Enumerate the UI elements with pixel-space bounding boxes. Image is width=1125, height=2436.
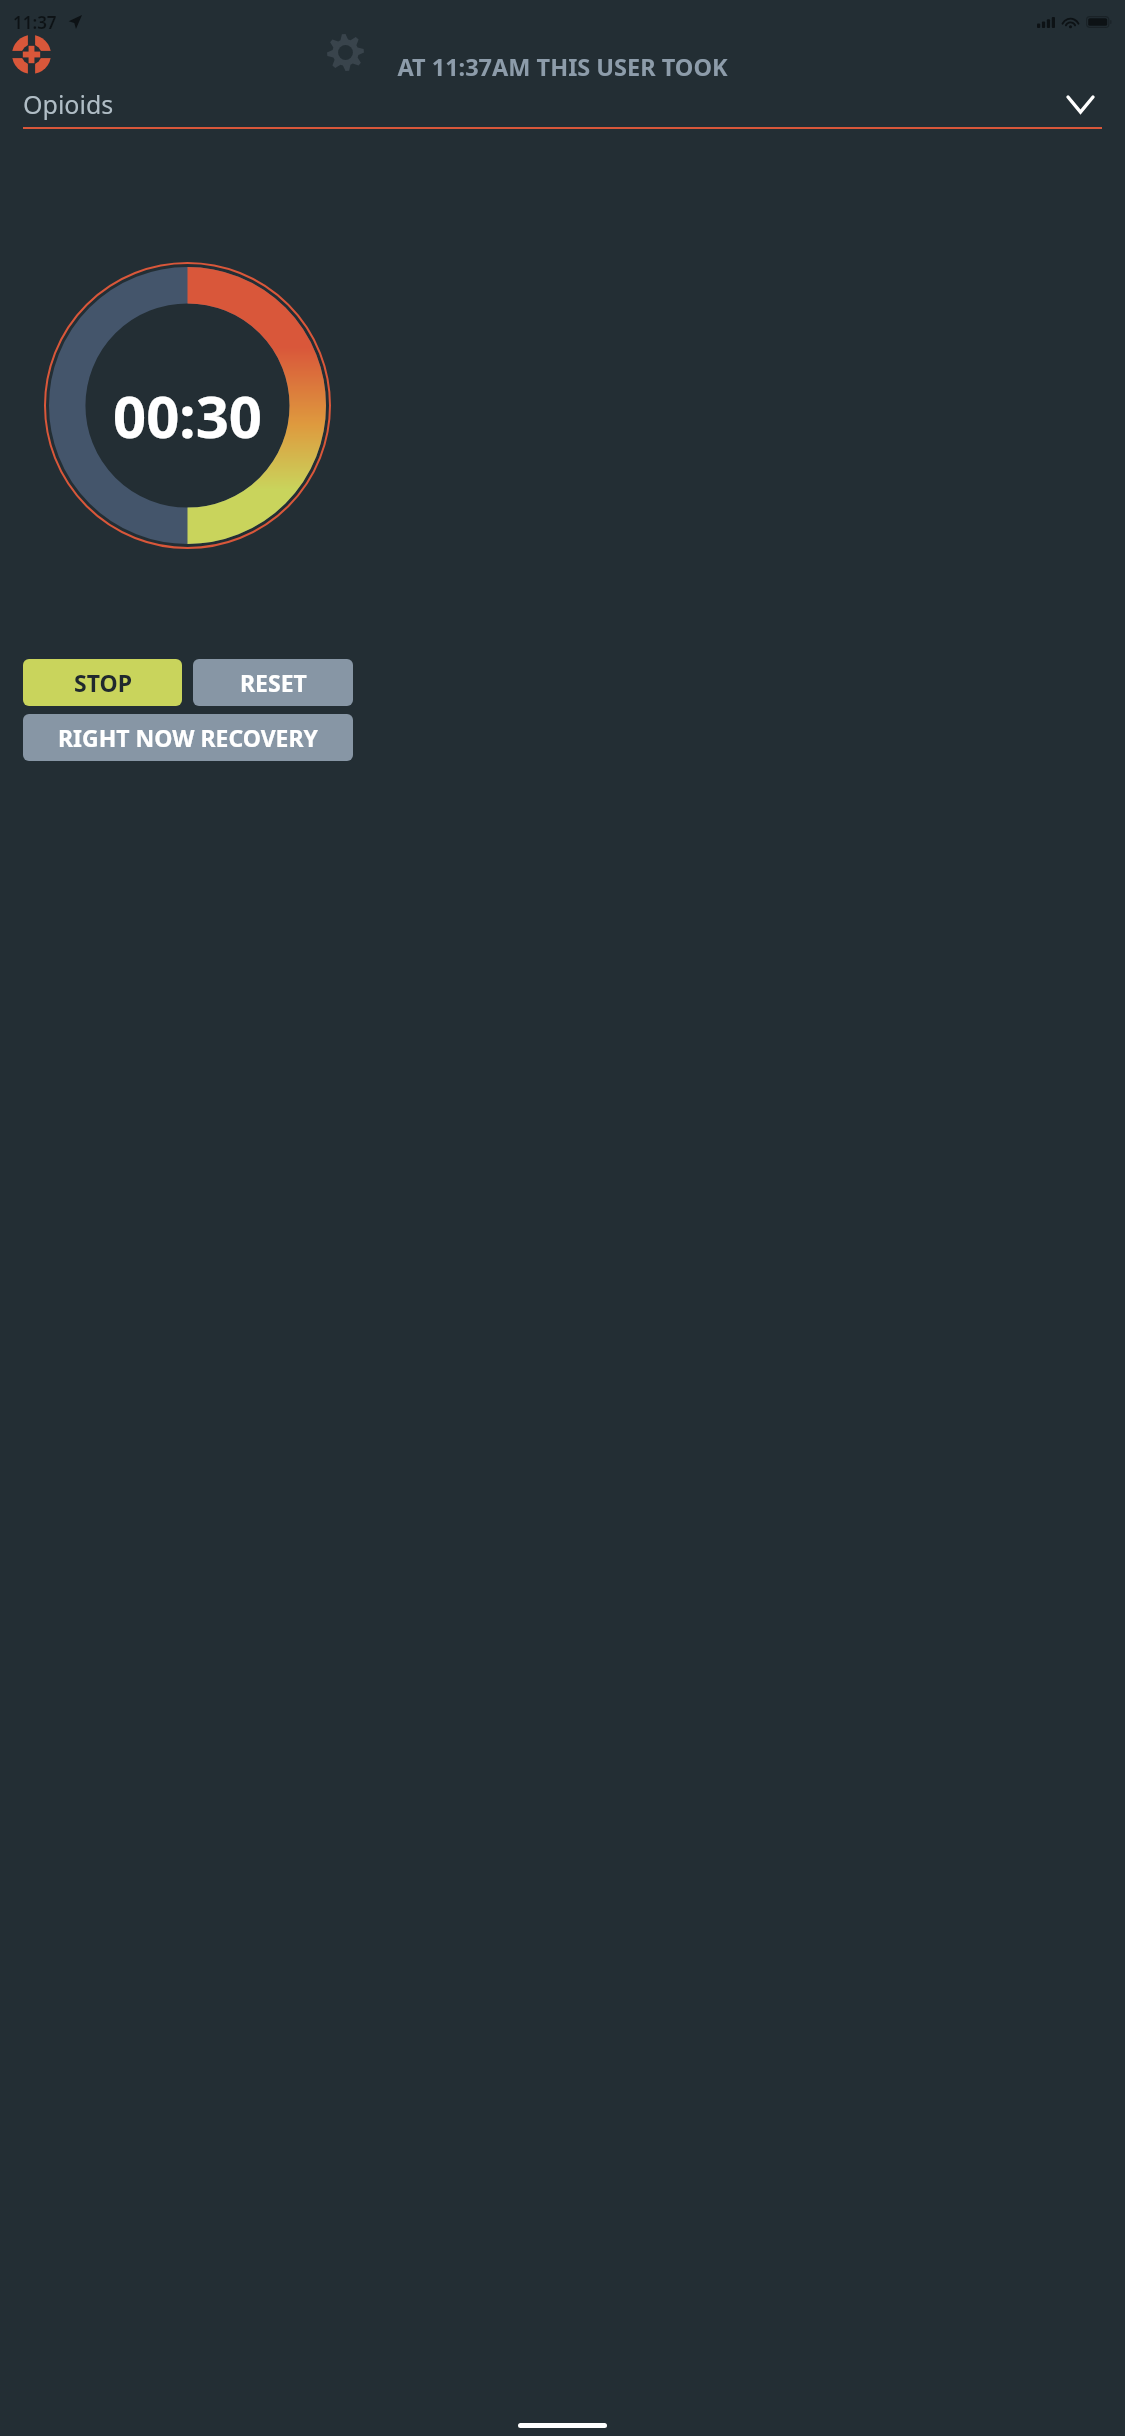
button[interactable]: RESET [193,659,353,706]
button[interactable]: RIGHT NOW RECOVERY [23,714,353,761]
button[interactable]: Opioids [23,82,1102,129]
button[interactable]: STOP [23,659,182,706]
staticText: 00:30 [44,376,331,455]
staticText: RIGHT NOW RECOVERY [58,722,318,753]
button[interactable]: Settings [319,26,371,78]
button[interactable]: Right Now Recovery logo [5,28,57,80]
staticText: RESET [240,667,307,698]
staticText: 11:37 [13,11,57,34]
staticText: AT 11:37AM THIS USER TOOK [0,51,1125,83]
staticText: Opioids [23,87,1068,121]
staticText: STOP [74,667,132,698]
